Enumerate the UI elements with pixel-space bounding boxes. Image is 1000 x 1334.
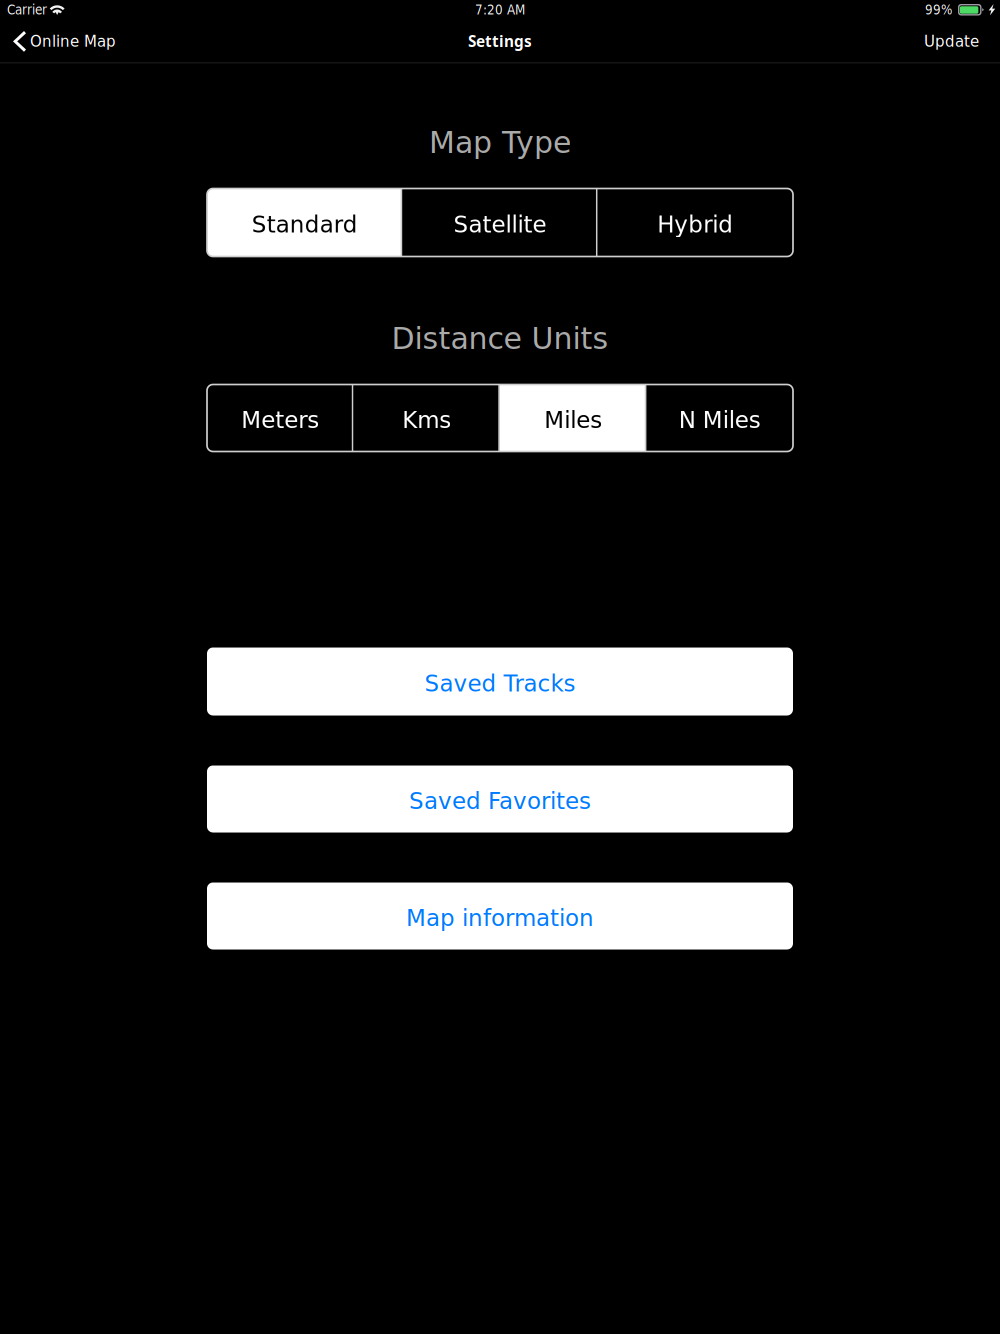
staticText: Saved Favorites [409,788,591,814]
staticText: Distance Units [391,321,608,356]
staticText: Map information [406,905,594,931]
button[interactable]: Satellite [402,188,598,256]
staticText: Satellite [453,211,546,238]
staticText: Miles [544,407,602,433]
button[interactable]: Update [912,24,1000,62]
staticText: Settings [468,31,532,51]
button[interactable]: Online Map [0,24,126,62]
button[interactable]: Kms [353,384,500,451]
staticText: Meters [241,407,319,433]
button[interactable]: Standard [207,188,402,256]
staticText: Update [924,31,979,51]
staticText: 99% [925,2,952,18]
button[interactable]: Map information [207,882,793,949]
button[interactable]: Saved Favorites [207,765,793,832]
button[interactable]: Meters [207,384,353,451]
staticText: 7:20 AM [475,2,525,18]
staticText: N Miles [679,407,761,433]
staticText: Saved Tracks [424,670,575,697]
staticText: Carrier [7,2,47,18]
staticText: Online Map [30,31,116,51]
staticText: Map Type [429,125,571,160]
button[interactable]: Saved Tracks [207,647,793,715]
staticText: Hybrid [657,211,733,238]
staticText: Standard [252,211,358,238]
button[interactable]: Hybrid [598,188,793,256]
button[interactable]: Miles [500,384,646,451]
staticText: Kms [402,407,451,433]
button[interactable]: N Miles [646,384,793,451]
